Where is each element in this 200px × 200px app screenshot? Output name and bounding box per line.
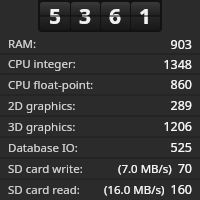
staticText: 1348 xyxy=(163,56,192,73)
staticText: 3 xyxy=(79,2,92,30)
staticText: RAM: xyxy=(8,36,37,52)
staticText: 1 xyxy=(139,2,152,30)
staticText: 2D graphics: xyxy=(8,98,76,114)
staticText: 3D graphics: xyxy=(8,119,76,135)
button[interactable]: SD card write: xyxy=(0,158,200,179)
staticText: SD card write: xyxy=(8,161,83,177)
staticText: CPU float-point: xyxy=(8,77,94,93)
staticText: (7.0 MB/s) xyxy=(118,161,172,177)
staticText: 525 xyxy=(170,139,192,156)
button[interactable]: RAM: xyxy=(0,34,200,54)
staticText: 903 xyxy=(170,36,192,53)
button[interactable]: CPU integer: xyxy=(0,54,200,74)
staticText: Database IO: xyxy=(8,140,78,156)
staticText: 1206 xyxy=(163,118,192,135)
staticText: 5 xyxy=(49,2,62,30)
staticText: CPU integer: xyxy=(8,56,76,72)
button[interactable]: Database IO: xyxy=(0,137,200,158)
staticText: SD card read: xyxy=(8,182,80,198)
staticText: 70 xyxy=(177,160,192,177)
staticText: 6 xyxy=(109,2,122,30)
staticText: 860 xyxy=(170,76,192,93)
button[interactable]: 3D graphics: xyxy=(0,116,200,137)
button[interactable]: 2D graphics: xyxy=(0,95,200,116)
staticText: 289 xyxy=(170,97,192,114)
button[interactable]: SD card read: xyxy=(0,179,200,200)
button[interactable]: CPU float-point: xyxy=(0,74,200,95)
staticText: (16.0 MB/s) xyxy=(104,182,165,198)
button[interactable]: Total benchmark score 5361 xyxy=(40,2,160,30)
staticText: 160 xyxy=(170,181,192,198)
